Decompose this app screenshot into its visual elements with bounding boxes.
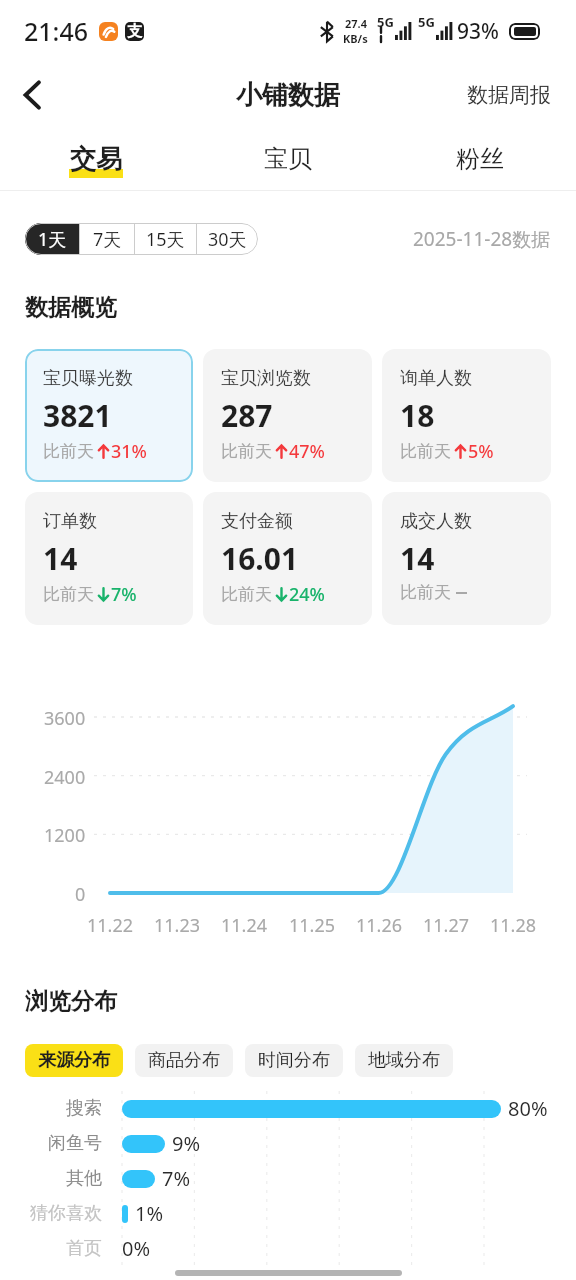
staticText: 比前天 (43, 441, 94, 462)
staticText: 3821 (43, 395, 112, 436)
staticText: 11.28 (490, 913, 537, 938)
staticText: KB/s (343, 31, 368, 46)
button[interactable]: Back (8, 71, 56, 119)
staticText: 比前天 (221, 441, 272, 462)
staticText: 宝贝浏览数 (221, 367, 311, 390)
staticText: 30天 (208, 227, 247, 252)
staticText: 80% (508, 1095, 548, 1122)
staticText: 11.24 (221, 913, 268, 938)
staticText: 数据周报 (467, 82, 551, 108)
staticText: 搜索 (66, 1097, 102, 1120)
button[interactable]: 询单人数 (382, 349, 551, 482)
button[interactable]: 交易 (0, 128, 192, 190)
staticText: 0% (122, 1235, 151, 1262)
button[interactable]: 宝贝 (192, 128, 384, 190)
staticText: 浏览分布 (25, 987, 117, 1016)
staticText: 16.01 (221, 538, 299, 579)
button[interactable]: 支付金额 (203, 492, 372, 625)
staticText: 11.23 (154, 913, 201, 938)
staticText: 9% (172, 1130, 201, 1157)
button[interactable]: 7天 (80, 223, 134, 255)
staticText: 93% (457, 17, 499, 46)
staticText: 首页 (66, 1237, 102, 1260)
staticText: 11.22 (87, 913, 134, 938)
button[interactable]: 成交人数 (382, 492, 551, 625)
staticText: 交易 (70, 143, 122, 176)
button[interactable]: 地域分布 (355, 1044, 453, 1077)
staticText: 7% (162, 1165, 191, 1192)
staticText: 成交人数 (400, 510, 472, 533)
staticText: 1% (135, 1200, 164, 1227)
staticText: 24% (289, 582, 325, 607)
staticText: 5% (468, 439, 494, 464)
staticText: 粉丝 (456, 144, 504, 174)
staticText: 商品分布 (148, 1049, 220, 1072)
staticText: 比前天 (400, 441, 451, 462)
staticText: 数据概览 (25, 293, 117, 322)
staticText: 比前天 (400, 582, 451, 603)
staticText: 时间分布 (258, 1049, 330, 1072)
staticText: 11.26 (356, 913, 403, 938)
button[interactable]: 来源分布 (25, 1044, 123, 1077)
staticText: 5G (377, 13, 394, 31)
button[interactable]: 时间分布 (245, 1044, 343, 1077)
button[interactable]: 宝贝曝光数 (25, 349, 193, 482)
staticText: 11.25 (289, 913, 336, 938)
staticText: 订单数 (43, 510, 97, 533)
staticText: 比前天 (43, 584, 94, 605)
staticText: 2025-11-28数据 (413, 226, 551, 252)
button[interactable]: 15天 (135, 223, 196, 255)
staticText: 7% (111, 582, 137, 607)
staticText: 猜你喜欢 (30, 1202, 102, 1225)
staticText: 287 (221, 395, 273, 436)
staticText: 2400 (44, 765, 86, 790)
button[interactable]: 粉丝 (384, 128, 576, 190)
staticText: 0 (75, 882, 86, 907)
staticText: 27.4 (345, 16, 367, 31)
button[interactable]: 1天 (25, 223, 79, 255)
staticText: 21:46 (24, 14, 89, 48)
staticText: 1200 (44, 823, 86, 848)
staticText: 11.27 (423, 913, 470, 938)
staticText: 支 (127, 22, 142, 41)
staticText: 7天 (93, 227, 122, 252)
staticText: 15天 (146, 227, 185, 252)
button[interactable]: 30天 (197, 223, 258, 255)
button[interactable]: 订单数 (25, 492, 193, 625)
staticText: 地域分布 (368, 1049, 440, 1072)
staticText: 31% (111, 439, 147, 464)
staticText: 14 (400, 538, 435, 579)
staticText: 其他 (66, 1167, 102, 1190)
button[interactable]: 数据周报 (442, 72, 576, 118)
button[interactable]: 商品分布 (135, 1044, 233, 1077)
staticText: 支付金额 (221, 510, 293, 533)
staticText: 宝贝曝光数 (43, 367, 133, 390)
staticText: 5G (418, 13, 435, 31)
staticText: 比前天 (221, 584, 272, 605)
staticText: 宝贝 (264, 144, 312, 174)
staticText: 47% (289, 439, 325, 464)
staticText: 来源分布 (38, 1049, 110, 1072)
staticText: 1天 (38, 227, 67, 252)
button[interactable]: 宝贝浏览数 (203, 349, 372, 482)
staticText: 14 (43, 538, 78, 579)
staticText: 3600 (44, 706, 86, 731)
staticText: 小铺数据 (236, 79, 340, 112)
staticText: 询单人数 (400, 367, 472, 390)
staticText: 18 (400, 395, 435, 436)
staticText: 闲鱼号 (48, 1132, 102, 1155)
